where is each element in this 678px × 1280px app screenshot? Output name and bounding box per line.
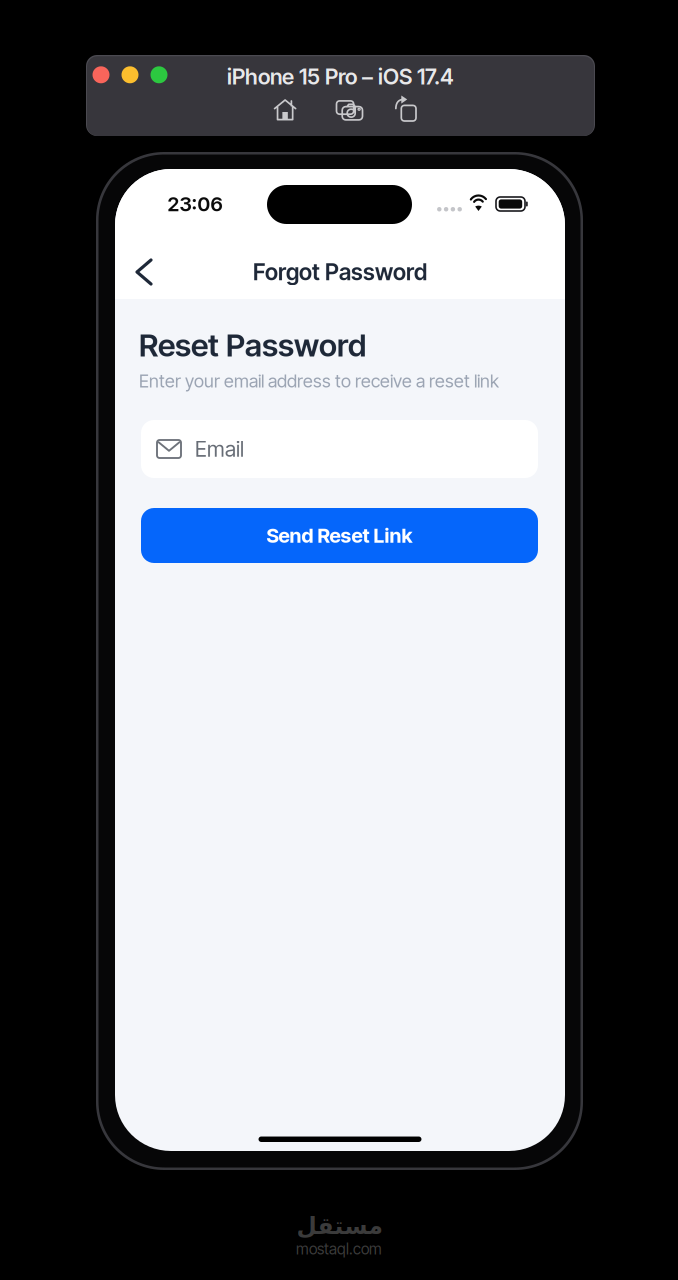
staticText: 23:06	[167, 192, 222, 216]
button[interactable]: Back	[115, 244, 169, 300]
button[interactable]: Rotate	[385, 85, 426, 131]
staticText: Enter your email address to receive a re…	[139, 370, 499, 392]
staticText: Reset Password	[139, 326, 366, 364]
staticText: مستقل	[296, 1212, 382, 1240]
button[interactable]: Home	[265, 90, 306, 130]
staticText: iPhone 15 Pro – iOS 17.4	[227, 63, 454, 90]
staticText: Forgot Password	[253, 258, 427, 286]
staticText: mostaql.com	[296, 1240, 382, 1258]
staticText: Send Reset Link	[266, 523, 412, 548]
button[interactable]: Send Reset Link	[141, 508, 538, 563]
button[interactable]: Screenshot	[326, 91, 372, 130]
staticText: Email	[195, 436, 244, 462]
button[interactable]: Email	[141, 420, 538, 478]
